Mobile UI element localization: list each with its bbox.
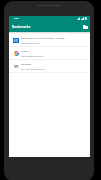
button[interactable]: Wikipedia	[9, 60, 90, 72]
staticText: https://pixabay.com/	[21, 42, 101, 45]
staticText: https://en.m.wikipedia.org/	[21, 68, 101, 71]
button[interactable]: Free Images & Free stock photos - Pixaba…	[9, 34, 90, 46]
button[interactable]: Bookmark folders	[81, 22, 90, 31]
staticText: Bookmarks	[12, 24, 31, 29]
staticText: 9:00	[14, 17, 19, 20]
staticText: Google	[21, 50, 101, 53]
staticText: Free Images & Free stock photos - Pixaba…	[21, 37, 101, 40]
button[interactable]: Google	[9, 47, 90, 59]
staticText: https://www.google.com/	[21, 55, 101, 58]
staticText: Wikipedia	[21, 63, 101, 66]
